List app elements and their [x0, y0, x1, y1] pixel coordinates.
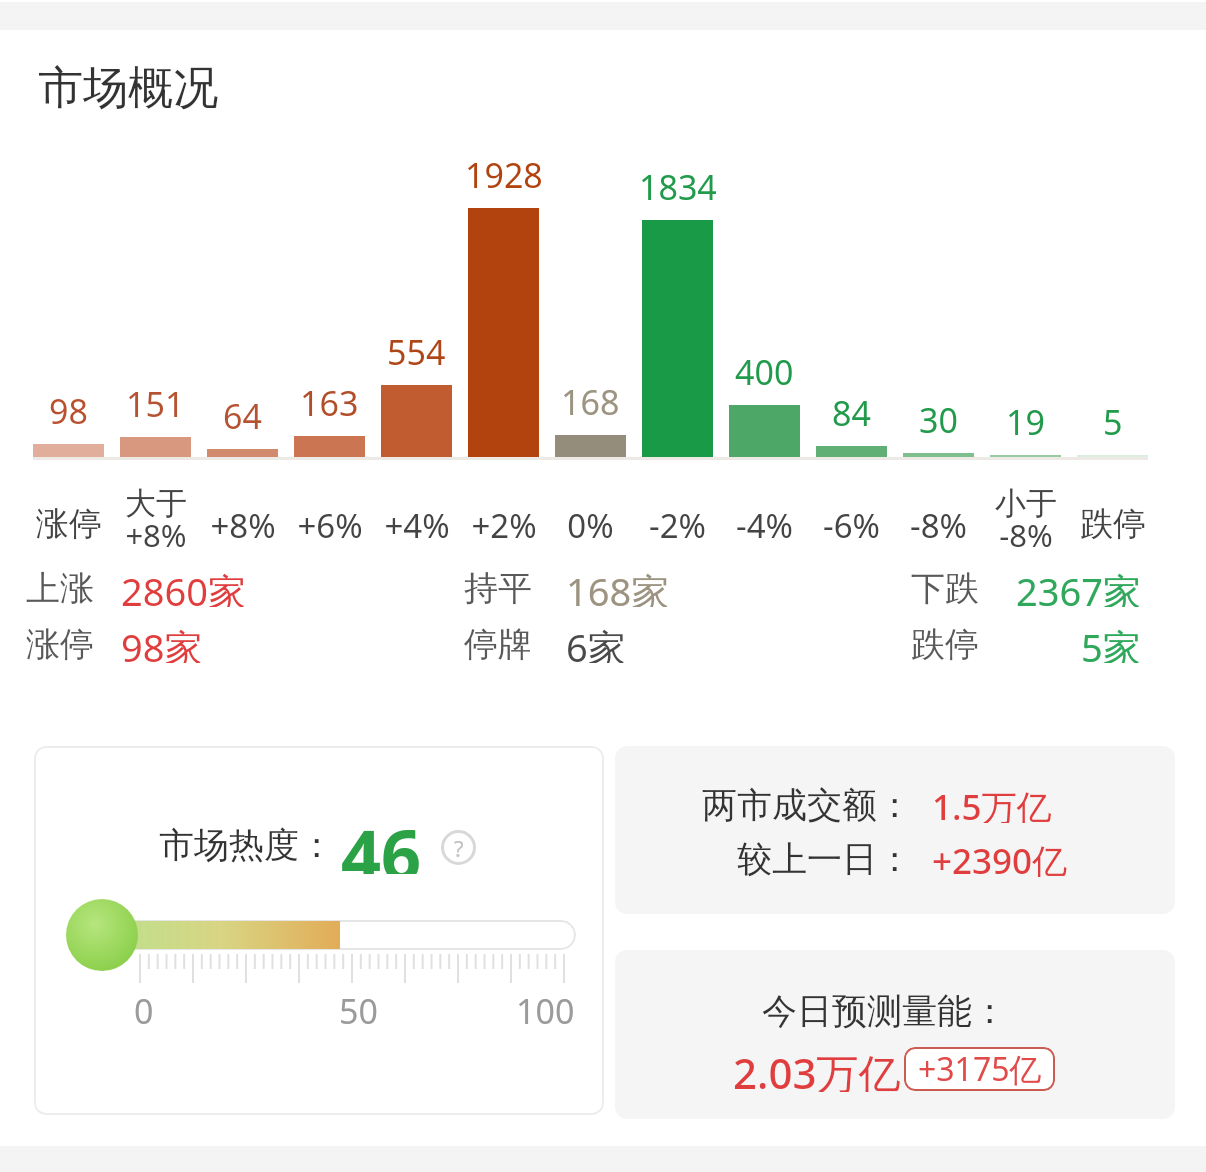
staticText: -4%: [736, 503, 793, 543]
button[interactable]: [615, 950, 1175, 1119]
staticText: 6家: [566, 621, 626, 663]
staticText: 19: [1006, 399, 1045, 441]
staticText: 5: [1103, 399, 1123, 441]
staticText: 市场热度：: [159, 823, 334, 867]
staticText: +6%: [297, 503, 363, 543]
staticText: +2390亿: [932, 837, 1068, 877]
staticText: 98: [49, 388, 88, 430]
staticText: 下跌: [911, 567, 979, 607]
staticText: 两市成交额：: [702, 783, 912, 823]
staticText: -8%: [910, 503, 967, 543]
button[interactable]: [34, 746, 604, 1115]
staticText: 554: [387, 329, 446, 371]
staticText: 2860家: [121, 565, 246, 607]
staticText: 今日预测量能：: [762, 989, 1007, 1029]
button[interactable]: [615, 746, 1175, 914]
staticText: 64: [223, 393, 262, 435]
staticText: 较上一日：: [737, 837, 912, 877]
staticText: 1.5万亿: [932, 783, 1052, 823]
staticText: 151: [126, 381, 185, 423]
staticText: 5家: [1081, 621, 1141, 663]
staticText: 小于 -8%: [995, 484, 1057, 552]
staticText: 停牌: [464, 623, 532, 663]
staticText: 84: [832, 390, 871, 432]
staticText: 168: [561, 379, 620, 421]
staticText: 涨停: [36, 503, 102, 543]
staticText: 跌停: [911, 623, 979, 663]
staticText: 跌停: [1080, 503, 1146, 543]
staticText: 30: [919, 397, 958, 439]
staticText: 0: [134, 988, 154, 1030]
staticText: 2.03万亿: [733, 1044, 901, 1092]
staticText: 163: [300, 380, 359, 422]
staticText: -6%: [823, 503, 880, 543]
staticText: 上涨: [26, 567, 94, 607]
staticText: 98家: [121, 621, 203, 663]
staticText: 涨停: [26, 623, 94, 663]
staticText: -2%: [649, 503, 706, 543]
staticText: +3175亿: [918, 1047, 1042, 1091]
staticText: 168家: [566, 565, 670, 607]
staticText: +4%: [384, 503, 450, 543]
staticText: 持平: [464, 567, 532, 607]
staticText: +2%: [471, 503, 537, 543]
staticText: 1928: [465, 152, 543, 194]
staticText: +8%: [210, 503, 276, 543]
staticText: ?: [454, 833, 464, 863]
staticText: 大于 +8%: [125, 484, 187, 552]
staticText: 50: [339, 988, 378, 1030]
staticText: 市场概况: [38, 60, 218, 114]
staticText: 0%: [567, 503, 614, 543]
button[interactable]: +3175亿: [904, 1047, 1055, 1091]
staticText: 400: [735, 349, 794, 391]
staticText: 46: [341, 806, 422, 874]
staticText: 2367家: [1016, 565, 1141, 607]
staticText: 100: [516, 988, 575, 1030]
staticText: 1834: [639, 164, 717, 206]
button[interactable]: ?: [441, 830, 476, 865]
